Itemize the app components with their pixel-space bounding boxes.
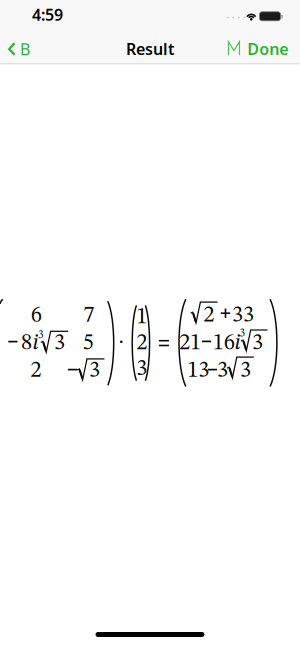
staticText: B	[20, 38, 30, 60]
staticText: 3	[136, 358, 147, 380]
staticText: 33	[232, 304, 254, 327]
staticText: 3	[252, 332, 263, 355]
staticText: Done	[247, 38, 288, 59]
staticText: 3	[240, 328, 246, 339]
staticText: 3	[89, 359, 100, 382]
staticText: i	[234, 332, 240, 355]
button[interactable]: B	[8, 38, 30, 60]
staticText: 1	[136, 306, 147, 329]
staticText: 3	[217, 359, 228, 382]
staticText: 3	[38, 329, 44, 341]
staticText: 13	[187, 359, 209, 382]
staticText: 4:59	[32, 4, 63, 25]
staticText: 6	[31, 304, 42, 327]
staticText: 2	[136, 332, 147, 355]
staticText: 3	[240, 359, 251, 382]
staticText: 5	[82, 332, 93, 355]
staticText: 3	[54, 332, 65, 355]
button[interactable]: MyScript	[228, 41, 240, 55]
staticText: 7	[83, 304, 94, 327]
staticText: 8	[21, 332, 32, 355]
staticText: Result	[126, 38, 174, 59]
staticText: i	[33, 332, 39, 355]
staticText: 21	[179, 332, 201, 355]
button[interactable]: Done	[247, 38, 288, 59]
staticText: 2	[30, 359, 41, 382]
staticText: 16	[213, 332, 235, 355]
staticText: 2	[203, 304, 214, 327]
